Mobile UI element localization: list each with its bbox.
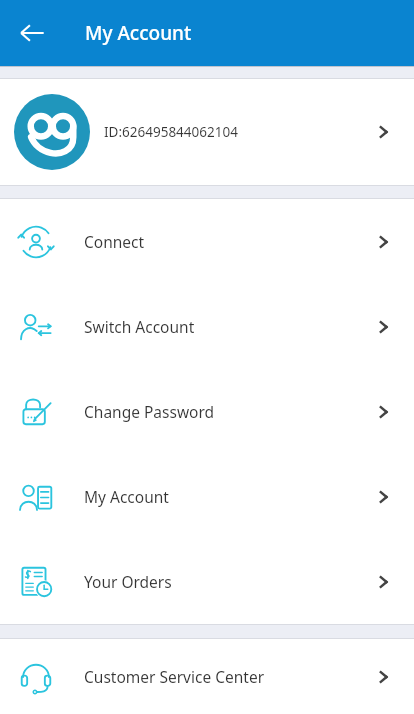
staticText: Your Orders: [84, 571, 172, 592]
staticText: Switch Account: [84, 316, 195, 337]
button[interactable]: Switch Account: [0, 284, 414, 369]
button[interactable]: Customer Service Center: [0, 639, 414, 714]
staticText: ID:626495844062104: [104, 123, 238, 141]
button[interactable]: Change Password: [0, 369, 414, 454]
staticText: My Account: [84, 486, 169, 507]
staticText: My Account: [85, 20, 192, 46]
button[interactable]: Connect: [0, 199, 414, 284]
button[interactable]: ID:626495844062104: [0, 79, 414, 185]
button[interactable]: Your Orders: [0, 539, 414, 624]
button[interactable]: My Account: [0, 454, 414, 539]
staticText: Connect: [84, 231, 145, 252]
staticText: Change Password: [84, 401, 215, 422]
staticText: Customer Service Center: [84, 666, 265, 687]
button[interactable]: Back: [8, 9, 56, 57]
